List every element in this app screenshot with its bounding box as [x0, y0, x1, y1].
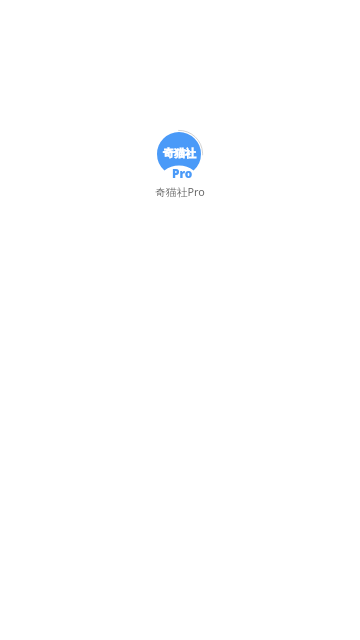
button[interactable]: 奇猫社Pro logo: [150, 118, 210, 199]
staticText: 奇猫社Pro: [150, 184, 210, 199]
other: 奇猫社Pro logo: [150, 118, 210, 182]
staticText: Pro: [172, 165, 193, 181]
staticText: 奇猫社: [163, 146, 196, 160]
